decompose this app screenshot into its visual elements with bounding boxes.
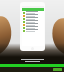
button[interactable] bbox=[22, 11, 44, 14]
button[interactable] bbox=[22, 26, 44, 29]
button[interactable] bbox=[22, 29, 44, 32]
button[interactable]: Install now bbox=[53, 68, 62, 71]
button[interactable] bbox=[22, 23, 44, 26]
button[interactable] bbox=[22, 17, 44, 20]
button[interactable] bbox=[22, 14, 44, 17]
button[interactable] bbox=[22, 20, 44, 23]
